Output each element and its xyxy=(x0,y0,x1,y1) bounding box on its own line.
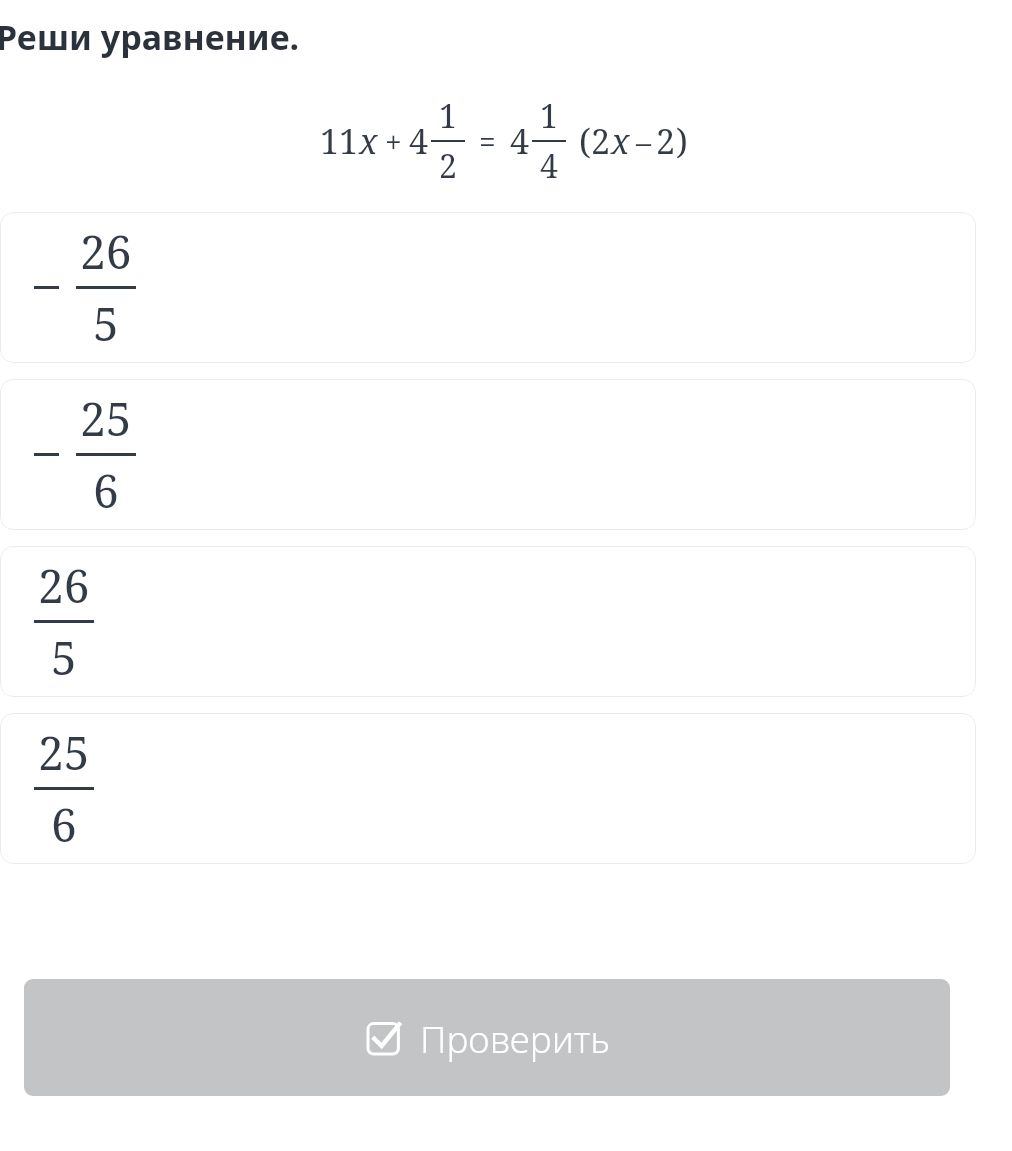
staticText: x xyxy=(611,118,630,164)
staticText: – xyxy=(636,121,651,162)
staticText: 25 xyxy=(38,721,90,784)
staticText: 1 xyxy=(439,94,457,138)
staticText: Проверить xyxy=(420,1013,610,1063)
staticText: x xyxy=(359,118,378,164)
button[interactable]: 25 xyxy=(0,379,976,530)
staticText: 25 xyxy=(80,387,132,450)
staticText: 2 xyxy=(591,118,611,164)
staticText: 4 xyxy=(510,118,530,164)
button[interactable]: 26 xyxy=(0,546,976,697)
staticText: 26 xyxy=(38,554,90,617)
button[interactable]: 26 xyxy=(0,212,976,363)
staticText: ( xyxy=(579,118,591,164)
staticText: 26 xyxy=(80,220,132,283)
button[interactable]: Проверить xyxy=(24,979,950,1096)
staticText: 2 xyxy=(656,118,676,164)
staticText: 6 xyxy=(93,459,119,522)
button[interactable]: 25 xyxy=(0,713,976,864)
staticText: 11 xyxy=(320,118,359,164)
staticText: 5 xyxy=(93,292,119,355)
staticText: 1 xyxy=(540,94,558,138)
staticText: 6 xyxy=(51,793,77,856)
staticText: 4 xyxy=(409,118,429,164)
staticText: 4 xyxy=(540,144,558,188)
staticText: 5 xyxy=(51,626,77,689)
staticText: = xyxy=(479,121,496,162)
staticText: Реши уравнение. xyxy=(0,14,300,60)
staticText: + xyxy=(385,121,402,162)
staticText: ) xyxy=(676,118,688,164)
staticText: 2 xyxy=(439,144,457,188)
